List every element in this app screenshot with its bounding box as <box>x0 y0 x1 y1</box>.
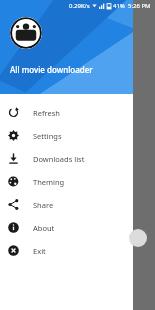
staticText: Refresh <box>33 108 60 118</box>
button[interactable]: Exit <box>0 239 133 262</box>
staticText: Exit <box>33 246 46 256</box>
button[interactable]: Share <box>0 193 133 216</box>
staticText: 41% <box>113 2 125 10</box>
button[interactable]: Downloads list <box>0 147 133 170</box>
button[interactable]: Settings <box>0 124 133 147</box>
staticText: 5:26 PM <box>128 2 151 10</box>
staticText: Share <box>33 200 54 210</box>
staticText: 0.29K/s <box>69 2 90 10</box>
button[interactable]: Theming <box>0 170 133 193</box>
staticText: About <box>33 223 55 233</box>
button[interactable]: About <box>0 216 133 239</box>
staticText: All movie downloader <box>10 64 93 75</box>
staticText: Theming <box>33 177 65 187</box>
button[interactable]: Floating action <box>129 229 147 247</box>
button[interactable]: Refresh <box>0 101 133 124</box>
staticText: Downloads list <box>33 154 85 164</box>
staticText: Settings <box>33 131 62 141</box>
